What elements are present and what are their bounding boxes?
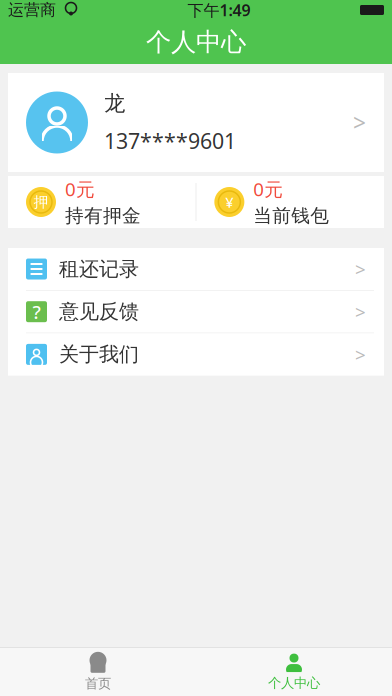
staticText: > [355,299,366,324]
staticText: > [355,342,366,367]
button[interactable]: 押 [8,169,196,235]
button[interactable]: ¥ [196,169,384,235]
button[interactable]: 租还记录 [8,248,384,291]
staticText: 0元 [253,177,283,201]
button[interactable]: ? [8,291,384,333]
staticText: 押 [33,193,48,211]
staticText: 个人中心 [268,675,320,691]
staticText: 意见反馈 [59,299,139,324]
staticText: 龙 [104,90,125,116]
staticText: > [353,107,366,137]
staticText: 个人中心 [146,26,246,57]
staticText: 当前钱包 [253,204,329,227]
staticText: 137****9601 [104,126,236,155]
staticText: 0元 [65,177,95,201]
staticText: ? [32,299,40,324]
button[interactable]: 个人中心 [196,648,392,696]
staticText: 持有押金 [65,204,141,227]
staticText: 关于我们 [59,342,139,367]
button[interactable]: 首页 [0,647,196,696]
staticText: 运营商 [8,0,56,20]
staticText: 首页 [85,675,111,692]
staticText: > [355,257,366,281]
button[interactable]: 龙 [8,73,384,172]
staticText: 租还记录 [59,257,139,281]
staticText: ¥ [225,192,233,212]
staticText: 下午1:49 [187,0,250,21]
button[interactable]: 关于我们 [8,333,384,375]
